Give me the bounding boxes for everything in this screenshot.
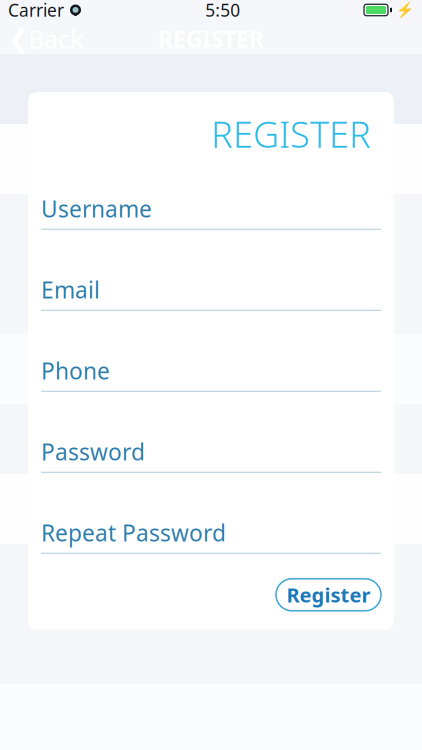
- staticText: ❮: [8, 25, 29, 53]
- button[interactable]: Phone: [41, 358, 381, 392]
- button[interactable]: ❮: [4, 16, 92, 62]
- staticText: Repeat Password: [41, 518, 226, 548]
- staticText: Username: [41, 194, 152, 224]
- button[interactable]: Register: [276, 579, 381, 611]
- staticText: Back: [28, 22, 84, 56]
- staticText: Carrier: [8, 0, 64, 21]
- staticText: Register: [286, 581, 370, 608]
- staticText: Password: [41, 437, 145, 467]
- staticText: REGISTER: [211, 110, 371, 158]
- button[interactable]: Repeat Password: [41, 520, 381, 554]
- staticText: ⚡: [396, 2, 414, 18]
- staticText: Phone: [41, 356, 110, 386]
- button[interactable]: Username: [41, 196, 381, 230]
- button[interactable]: Password: [41, 439, 381, 473]
- button[interactable]: Email: [41, 277, 381, 311]
- staticText: Email: [41, 275, 100, 305]
- staticText: REGISTER: [158, 24, 264, 54]
- staticText: 5:50: [205, 0, 240, 21]
